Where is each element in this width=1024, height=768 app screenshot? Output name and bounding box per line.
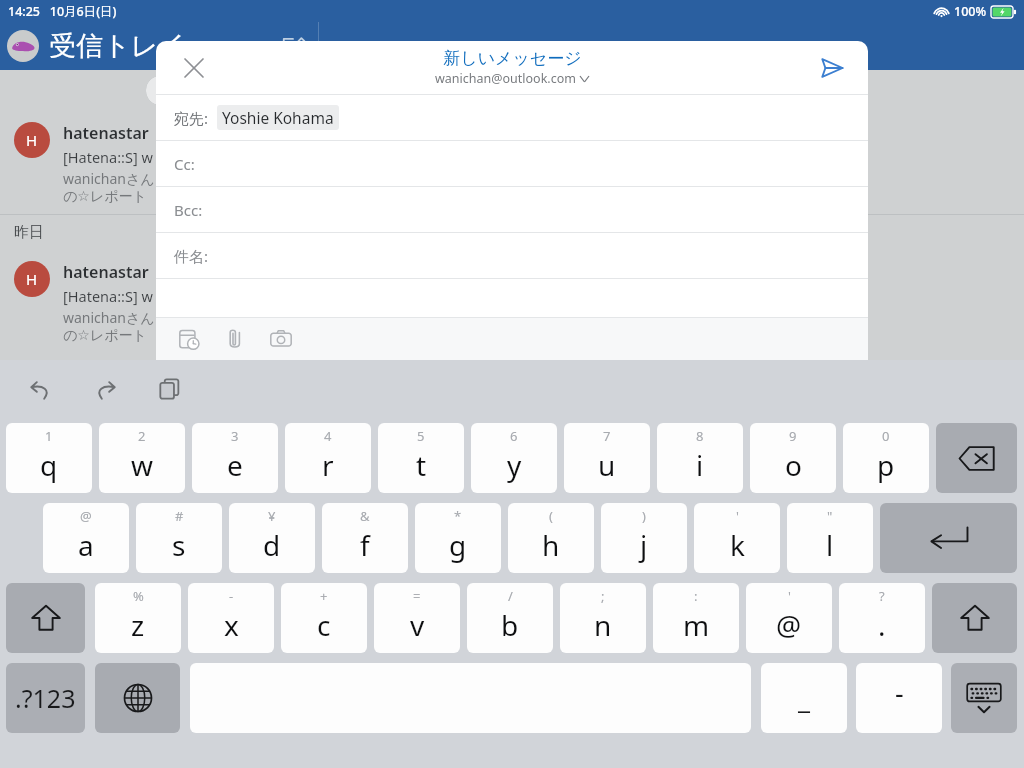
- button[interactable]: (: [508, 503, 594, 573]
- staticText: r: [322, 446, 334, 484]
- button[interactable]: ;: [560, 583, 646, 653]
- staticText: 昨日: [14, 223, 44, 242]
- staticText: z: [131, 606, 145, 644]
- button[interactable]: Camera: [266, 324, 296, 354]
- button[interactable]: 5: [378, 423, 464, 493]
- button[interactable]: Redo: [85, 369, 125, 409]
- button[interactable]: New message: [276, 29, 310, 63]
- button[interactable]: Account: [7, 30, 39, 62]
- staticText: l: [826, 526, 834, 564]
- button[interactable]: _: [761, 663, 847, 733]
- staticText: 受信トレイ: [49, 29, 186, 63]
- staticText: #: [175, 507, 184, 525]
- staticText: w: [131, 446, 154, 484]
- button[interactable]: Bcc:: [156, 187, 868, 232]
- button[interactable]: [880, 503, 1017, 573]
- button[interactable]: -: [188, 583, 274, 653]
- button[interactable]: Cc:: [156, 141, 868, 186]
- staticText: s: [172, 526, 186, 564]
- staticText: Cc:: [174, 154, 195, 174]
- staticText: x: [224, 606, 239, 644]
- button[interactable]: 7: [564, 423, 650, 493]
- button[interactable]: %: [95, 583, 181, 653]
- button[interactable]: [6, 583, 85, 653]
- staticText: 件名:: [174, 246, 209, 266]
- staticText: [Hatena::S] w: [63, 147, 153, 167]
- button[interactable]: ": [787, 503, 873, 573]
- button[interactable]: ): [601, 503, 687, 573]
- button[interactable]: 4: [285, 423, 371, 493]
- button[interactable]: H: [0, 110, 1024, 214]
- button[interactable]: ?: [839, 583, 925, 653]
- staticText: その他: [218, 81, 264, 100]
- button[interactable]: /: [467, 583, 553, 653]
- button[interactable]: 9: [750, 423, 836, 493]
- button[interactable]: H: [0, 249, 1024, 353]
- staticText: d: [263, 526, 281, 564]
- staticText: H: [26, 130, 38, 150]
- staticText: q: [40, 446, 58, 484]
- staticText: 9: [789, 427, 797, 445]
- staticText: ": [827, 507, 833, 525]
- button[interactable]: [932, 583, 1017, 653]
- button[interactable]: 1: [6, 423, 92, 493]
- button[interactable]: 優先: [146, 76, 204, 105]
- button[interactable]: 宛先:: [156, 95, 868, 140]
- staticText: *: [454, 507, 462, 525]
- staticText: H: [26, 269, 38, 289]
- button[interactable]: .?123: [6, 663, 85, 733]
- staticText: o: [785, 446, 802, 484]
- staticText: ': [788, 587, 791, 605]
- staticText: の☆レポート: [63, 327, 147, 345]
- staticText: u: [598, 446, 616, 484]
- button[interactable]: 6: [471, 423, 557, 493]
- staticText: +: [320, 587, 328, 605]
- staticText: ): [642, 507, 646, 525]
- staticText: p: [877, 446, 895, 484]
- button[interactable]: ¥: [229, 503, 315, 573]
- button[interactable]: [95, 663, 180, 733]
- button[interactable]: [936, 423, 1017, 493]
- button[interactable]: *: [415, 503, 501, 573]
- staticText: b: [501, 606, 519, 644]
- button[interactable]: -: [856, 663, 942, 733]
- button[interactable]: &: [322, 503, 408, 573]
- button[interactable]: =: [374, 583, 460, 653]
- button[interactable]: ': [694, 503, 780, 573]
- staticText: 新しいメッセージ: [443, 48, 582, 69]
- staticText: (: [549, 507, 553, 525]
- button[interactable]: Hide keyboard: [951, 663, 1017, 733]
- button[interactable]: 2: [99, 423, 185, 493]
- staticText: wanichanさん: [63, 169, 155, 188]
- button[interactable]: 0: [843, 423, 929, 493]
- button[interactable]: Attach file: [220, 324, 250, 354]
- button[interactable]: @: [43, 503, 129, 573]
- staticText: -: [229, 587, 234, 605]
- staticText: :: [694, 587, 698, 605]
- staticText: 14:25 10月6日(日): [8, 3, 117, 20]
- staticText: y: [507, 446, 522, 484]
- button[interactable]: 3: [192, 423, 278, 493]
- button[interactable]: +: [281, 583, 367, 653]
- staticText: t: [416, 446, 427, 484]
- button[interactable]: :: [653, 583, 739, 653]
- button[interactable]: ': [746, 583, 832, 653]
- staticText: Bcc:: [174, 200, 203, 220]
- staticText: 6: [510, 427, 518, 445]
- button[interactable]: #: [136, 503, 222, 573]
- button[interactable]: その他: [204, 76, 278, 105]
- button[interactable]: Send: [810, 46, 854, 90]
- staticText: 宛先:: [174, 108, 209, 128]
- button[interactable]: 件名:: [156, 233, 868, 278]
- staticText: の☆レポート: [63, 188, 147, 206]
- staticText: %: [133, 587, 144, 605]
- staticText: ?: [879, 587, 885, 605]
- button[interactable]: Paste: [150, 369, 190, 409]
- staticText: 5: [417, 427, 425, 445]
- button[interactable]: Undo: [20, 369, 60, 409]
- button[interactable]: 8: [657, 423, 743, 493]
- button[interactable]: Schedule: [174, 324, 204, 354]
- button[interactable]: Close: [172, 46, 216, 90]
